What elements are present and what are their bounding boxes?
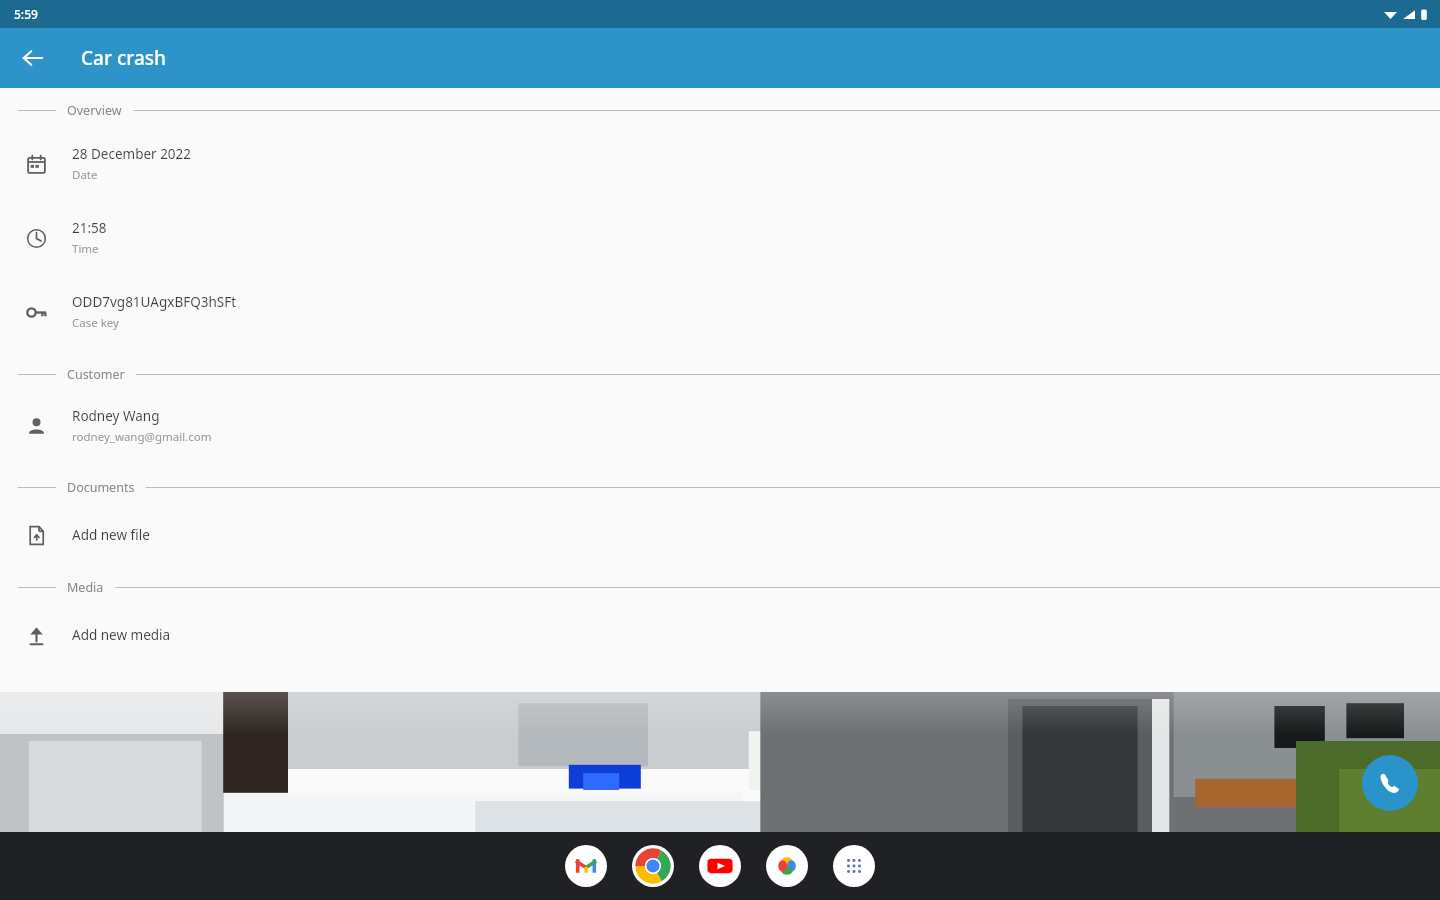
button[interactable]: 21:58 <box>0 216 1440 260</box>
button[interactable]: ODD7vg81UAgxBFQ3hSFt <box>0 290 1440 334</box>
staticText: Time <box>72 241 99 257</box>
button[interactable]: Add new media <box>0 618 1440 652</box>
button[interactable]: Back <box>9 34 57 82</box>
button[interactable]: All apps <box>833 845 875 887</box>
staticText: 21:58 <box>72 219 107 237</box>
staticText: 28 December 2022 <box>72 145 192 163</box>
button[interactable]: Google Photos <box>766 845 808 887</box>
staticText: Customer <box>67 366 125 382</box>
staticText: rodney_wang@gmail.com <box>72 429 212 445</box>
button[interactable]: Gmail <box>565 845 607 887</box>
staticText: Date <box>72 167 98 183</box>
button[interactable]: 28 December 2022 <box>0 142 1440 186</box>
staticText: Documents <box>67 479 135 495</box>
staticText: Media <box>67 579 104 595</box>
staticText: Rodney Wang <box>72 407 160 425</box>
button[interactable]: Chrome <box>632 845 674 887</box>
staticText: Car crash <box>81 45 166 71</box>
staticText: Overview <box>67 102 122 118</box>
button[interactable]: Rodney Wang <box>0 404 1440 448</box>
button[interactable]: Add new file <box>0 518 1440 552</box>
button[interactable]: YouTube <box>699 845 741 887</box>
staticText: 5:59 <box>14 6 38 22</box>
button[interactable] <box>0 692 1440 832</box>
staticText: Add new media <box>72 626 171 644</box>
staticText: ODD7vg81UAgxBFQ3hSFt <box>72 293 237 311</box>
staticText: Case key <box>72 315 119 331</box>
button[interactable]: Call <box>1362 755 1418 811</box>
staticText: Add new file <box>72 526 150 544</box>
